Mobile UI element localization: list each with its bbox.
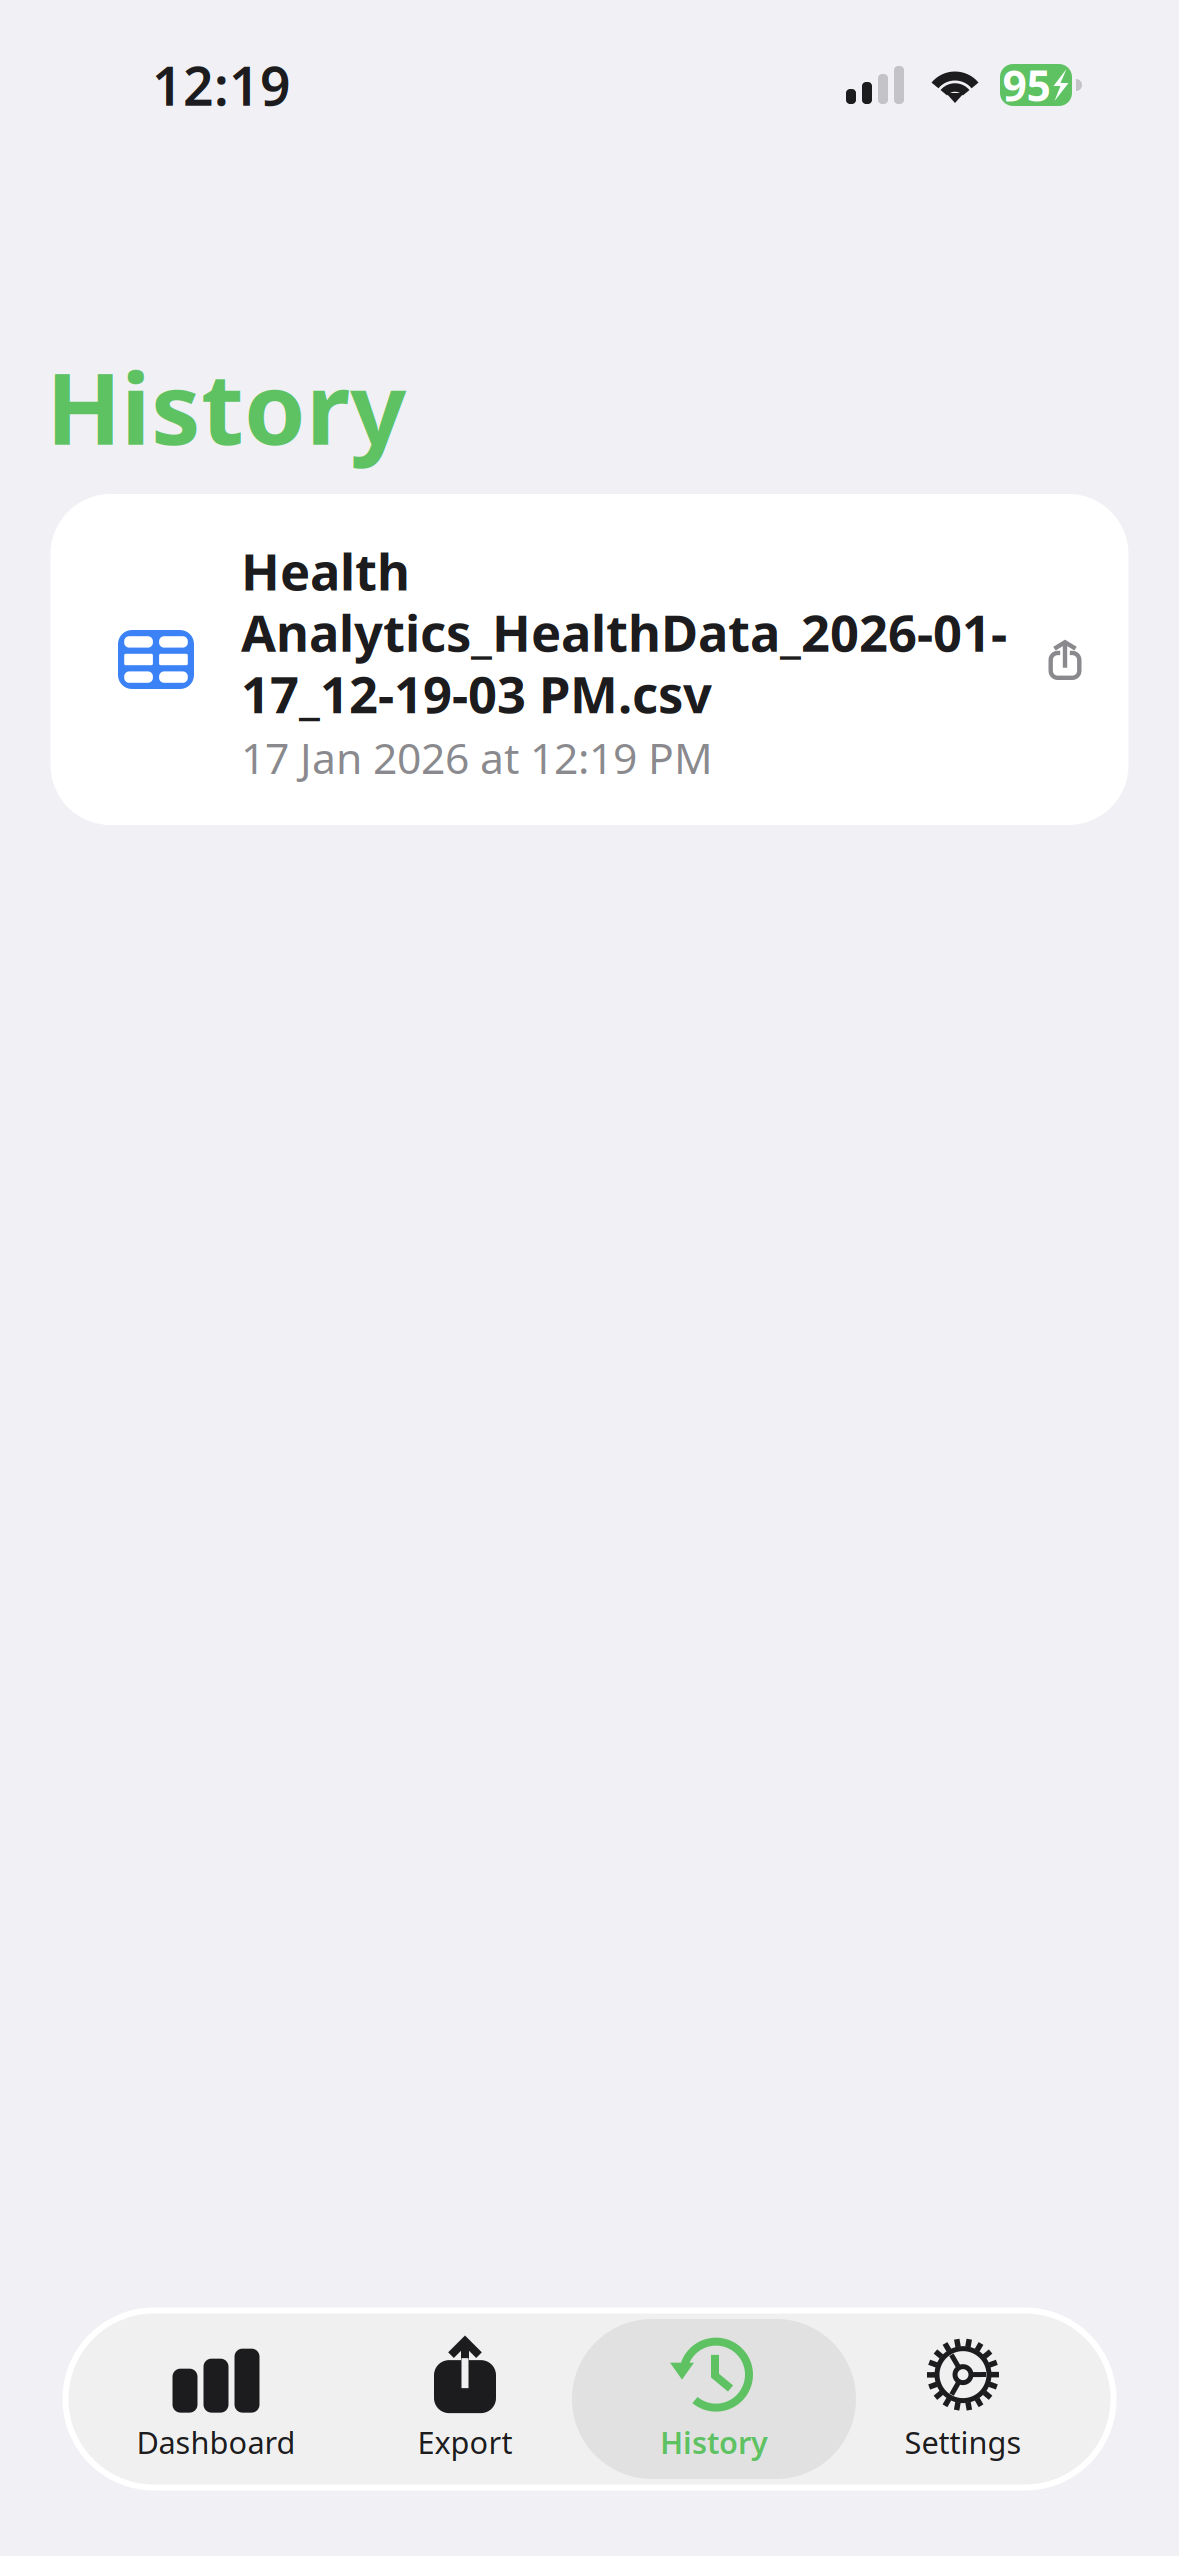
button[interactable]: Share: [1021, 615, 1109, 703]
staticText: Dashboard: [136, 2422, 295, 2462]
staticText: 12:19: [152, 50, 291, 120]
staticText: 17 Jan 2026 at 12:19 PM: [241, 729, 713, 786]
staticText: 95: [1002, 57, 1050, 113]
button[interactable]: Settings: [838, 2309, 1087, 2489]
button[interactable]: History: [589, 2309, 838, 2489]
staticText: Health Analytics_HealthData_2026-01-17_1…: [241, 537, 1007, 727]
button[interactable]: Dashboard: [91, 2309, 340, 2489]
staticText: Settings: [904, 2422, 1021, 2462]
staticText: History: [660, 2422, 768, 2462]
button[interactable]: Export: [340, 2309, 589, 2489]
staticText: Export: [417, 2422, 512, 2462]
staticText: History: [46, 341, 406, 472]
